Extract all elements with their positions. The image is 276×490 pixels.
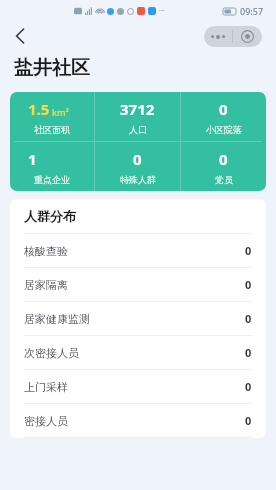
- button[interactable]: 密接人员: [10, 404, 266, 437]
- staticText: 0: [245, 413, 252, 428]
- staticText: 人口: [129, 124, 147, 135]
- staticText: 居家健康监测: [24, 312, 90, 326]
- button[interactable]: 居家隔离: [10, 268, 266, 301]
- staticText: 密接人员: [24, 414, 68, 428]
- staticText: 次密接人员: [24, 346, 79, 360]
- staticText: 党员: [215, 174, 233, 185]
- button[interactable]: 核酸查验: [10, 234, 266, 267]
- staticText: 09:57: [240, 5, 264, 17]
- staticText: 0: [245, 277, 252, 292]
- button[interactable]: 0: [181, 142, 266, 191]
- staticText: 盐井社区: [14, 56, 90, 80]
- button[interactable]: 居家健康监测: [10, 302, 266, 335]
- staticText: ···: [159, 6, 165, 16]
- staticText: 核酸查验: [24, 244, 68, 258]
- button[interactable]: 1: [10, 142, 94, 191]
- staticText: 0: [245, 345, 252, 360]
- staticText: 1: [28, 149, 37, 169]
- staticText: 0: [245, 243, 252, 258]
- staticText: 社区面积: [34, 124, 70, 135]
- staticText: 居家隔离: [24, 278, 68, 292]
- button[interactable]: More options: [204, 26, 232, 47]
- staticText: 0: [245, 311, 252, 326]
- button[interactable]: Close mini program: [233, 26, 262, 47]
- staticText: 特殊人群: [120, 174, 156, 185]
- button[interactable]: 3712: [95, 92, 180, 141]
- button[interactable]: Back: [8, 24, 32, 48]
- button[interactable]: 1.5: [10, 92, 94, 141]
- staticText: 0: [133, 149, 142, 169]
- staticText: 1.5: [28, 99, 50, 119]
- staticText: 小区院落: [206, 124, 242, 135]
- button[interactable]: 0: [181, 92, 266, 141]
- staticText: 0: [219, 99, 228, 119]
- button[interactable]: 次密接人员: [10, 336, 266, 369]
- staticText: 0: [245, 379, 252, 394]
- staticText: 人群分布: [24, 208, 76, 224]
- staticText: 0: [219, 149, 228, 169]
- button[interactable]: 上门采样: [10, 370, 266, 403]
- staticText: 上门采样: [24, 380, 68, 394]
- staticText: 重点企业: [34, 174, 70, 185]
- button[interactable]: 0: [95, 142, 180, 191]
- staticText: 3712: [120, 99, 155, 119]
- staticText: km²: [52, 106, 69, 118]
